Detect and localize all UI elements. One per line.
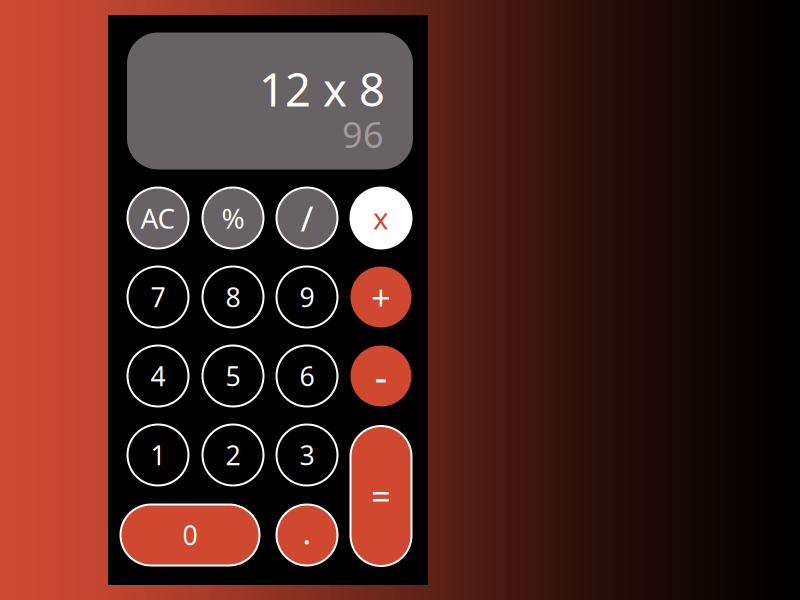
button[interactable]: + — [350, 266, 411, 327]
button[interactable]: 3 — [276, 424, 337, 485]
button[interactable]: AC — [127, 187, 188, 248]
staticText: 3 — [299, 437, 314, 473]
button[interactable]: 2 — [202, 424, 263, 485]
button[interactable]: x — [350, 187, 411, 248]
staticText: 12 x 8 — [259, 59, 385, 119]
button[interactable]: 0 — [120, 504, 259, 565]
staticText: AC — [140, 199, 175, 237]
staticText: 7 — [150, 279, 165, 315]
staticText: / — [300, 195, 313, 241]
staticText: 96 — [342, 110, 384, 158]
staticText: 4 — [150, 358, 165, 394]
button[interactable]: 1 — [127, 424, 188, 485]
staticText: 2 — [225, 437, 240, 473]
staticText: - — [374, 349, 387, 402]
button[interactable]: 8 — [202, 266, 263, 327]
button[interactable]: 7 — [127, 266, 188, 327]
staticText: x — [373, 198, 389, 237]
button[interactable]: % — [202, 187, 263, 248]
button[interactable]: . — [276, 504, 337, 565]
button[interactable]: 5 — [202, 345, 263, 406]
staticText: + — [371, 274, 391, 320]
staticText: 1 — [150, 437, 165, 473]
staticText: 6 — [299, 358, 314, 394]
staticText: % — [221, 199, 244, 237]
button[interactable]: - — [350, 345, 411, 406]
staticText: = — [371, 473, 391, 519]
staticText: 9 — [299, 279, 314, 315]
button[interactable]: 6 — [276, 345, 337, 406]
staticText: 5 — [225, 358, 240, 394]
staticText: . — [302, 511, 311, 553]
staticText: 0 — [182, 517, 197, 553]
button[interactable]: 4 — [127, 345, 188, 406]
button[interactable]: / — [276, 187, 337, 248]
staticText: 8 — [225, 279, 240, 315]
button[interactable]: = — [350, 426, 411, 566]
button[interactable]: 9 — [276, 266, 337, 327]
